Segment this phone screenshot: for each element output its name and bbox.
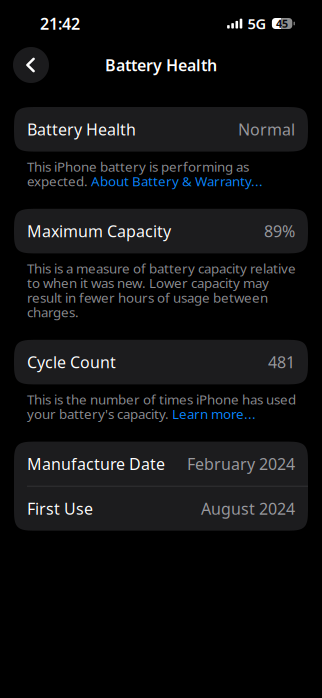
staticText: This iPhone battery is performing as [27,158,249,175]
button[interactable]: First Use [14,486,308,531]
staticText: August 2024 [201,498,295,519]
staticText: 21:42 [40,13,80,34]
staticText: About Battery & Warranty... [91,172,263,190]
staticText: 481 [268,351,295,373]
button[interactable]: Manufacture Date [14,442,308,486]
staticText: This is a measure of battery capacity re… [27,259,296,277]
button[interactable]: Cycle Count [0,340,322,384]
staticText: to when it was new. Lower capacity may [27,274,269,292]
staticText: charges. [27,303,79,321]
staticText: Maximum Capacity [27,220,171,242]
staticText: Battery Health [105,54,217,76]
staticText: 89% [264,220,295,242]
staticText: 45 [276,16,288,31]
button[interactable]: About Battery & Warranty... [91,172,263,190]
button[interactable]: Learn more... [172,405,256,423]
button[interactable]: Maximum Capacity [0,209,322,253]
staticText: your battery's capacity. [27,405,172,423]
staticText: Learn more... [172,405,256,423]
staticText: This is the number of times iPhone has u… [27,390,296,408]
staticText: expected. [27,172,91,190]
staticText: Manufacture Date [27,453,165,474]
button[interactable]: Back [13,47,49,83]
button[interactable]: Battery Health [0,107,322,152]
staticText: First Use [27,498,93,519]
staticText: February 2024 [187,453,295,474]
staticText: Battery Health [27,119,136,140]
staticText: result in fewer hours of usage between [27,289,268,306]
staticText: Cycle Count [27,351,116,373]
staticText: 5G [247,13,266,33]
staticText: Normal [238,119,295,140]
